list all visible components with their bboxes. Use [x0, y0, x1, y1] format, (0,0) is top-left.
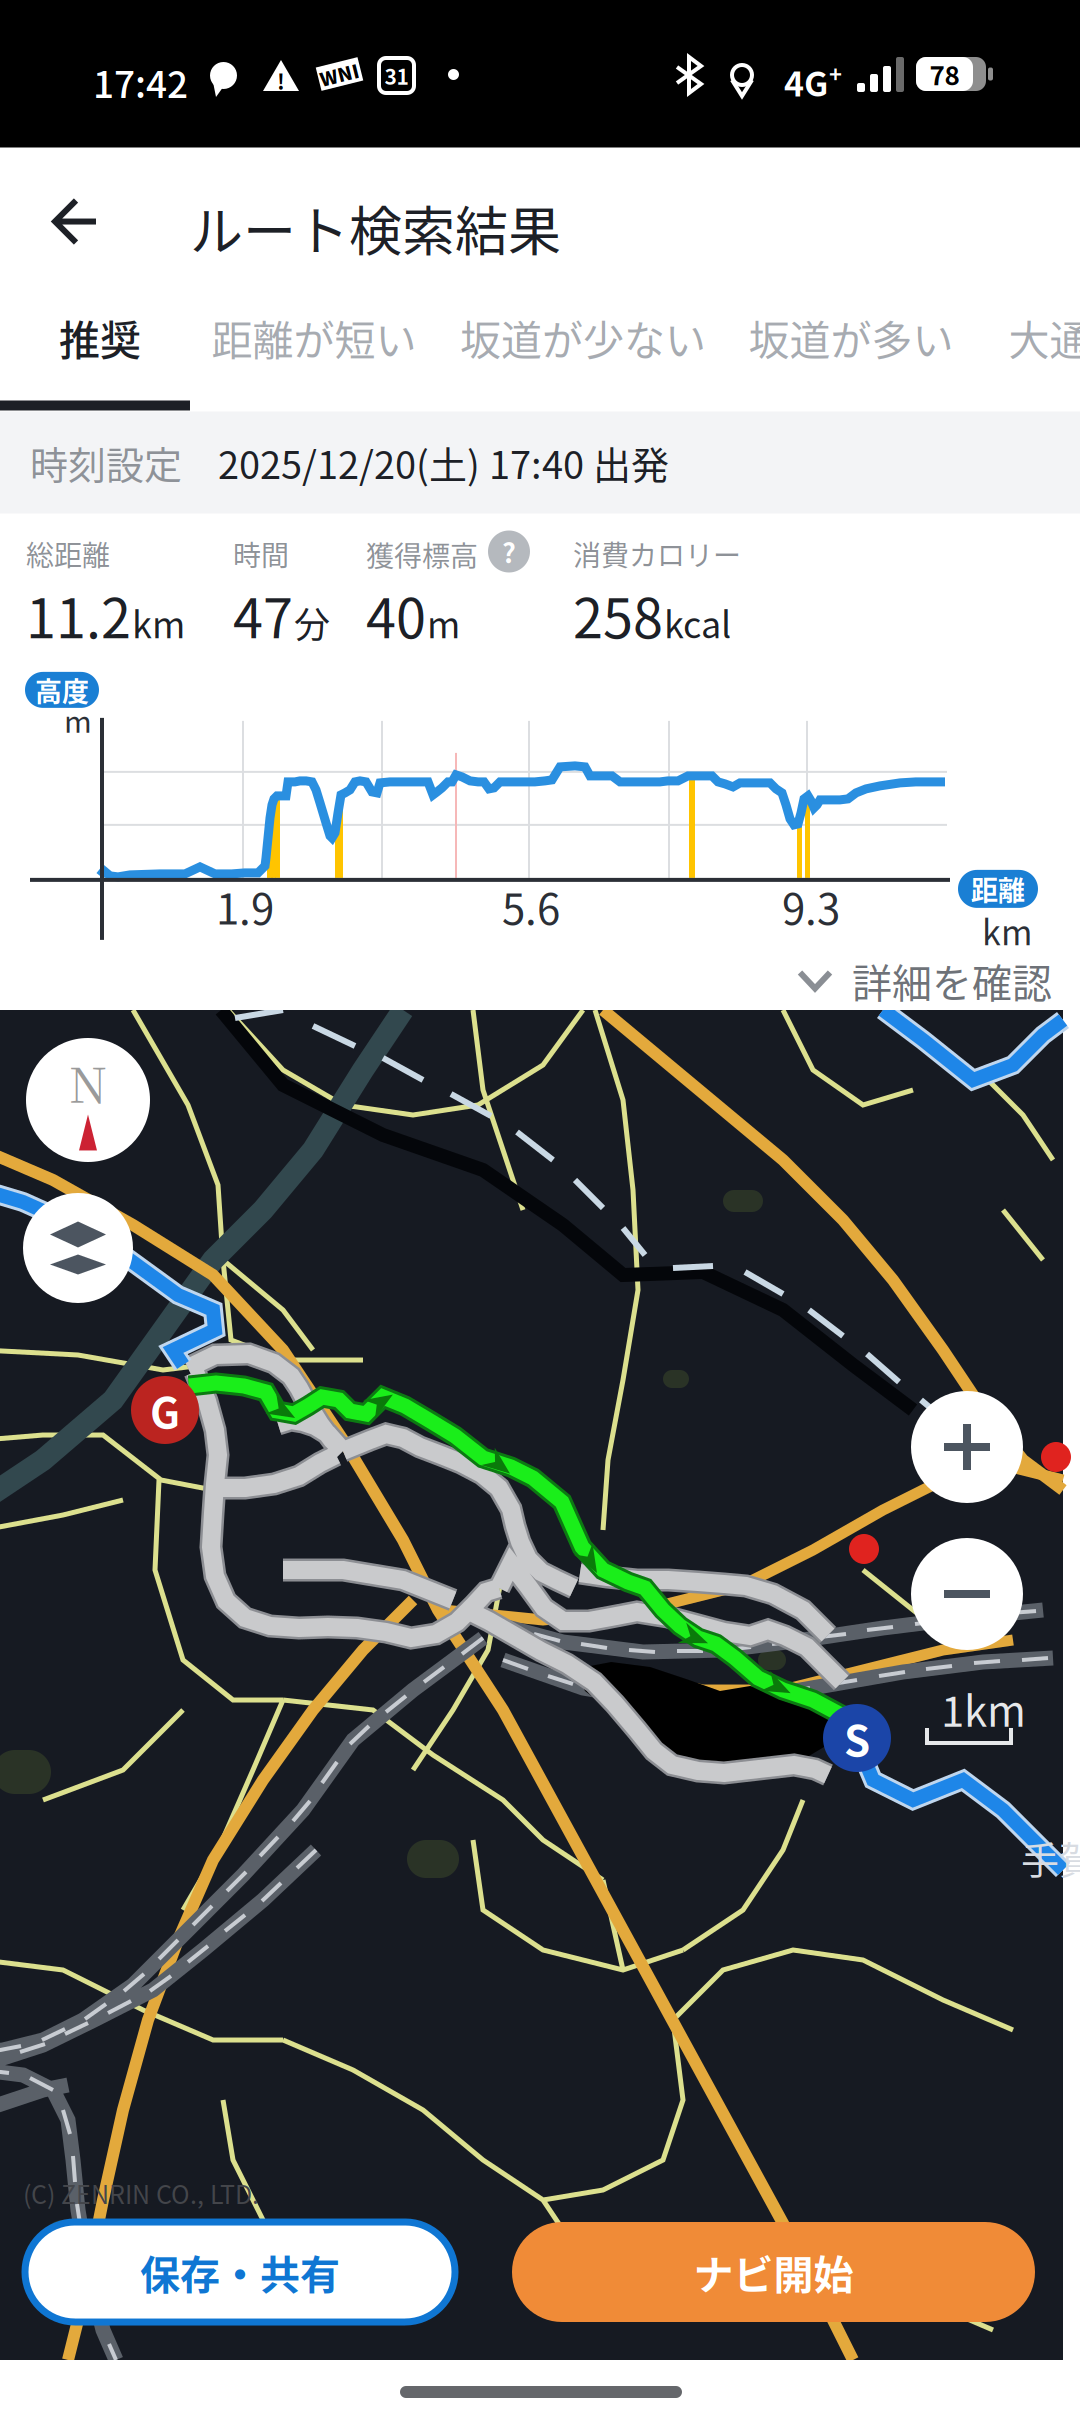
staticText: 保存・共有: [140, 2243, 340, 2301]
button[interactable]: ナビ開始: [512, 2222, 1035, 2322]
button[interactable]: 坂道が多い: [736, 277, 966, 397]
staticText: km: [982, 906, 1032, 955]
staticText: 詳細を確認: [852, 951, 1052, 1009]
staticText: 時刻設定: [30, 435, 182, 490]
staticText: 11.2: [26, 575, 131, 654]
button[interactable]: 方位: [26, 1038, 150, 1162]
staticText: 78: [929, 55, 959, 93]
staticText: 1.9: [216, 876, 274, 937]
staticText: kcal: [664, 596, 731, 648]
staticText: WNI: [319, 60, 359, 88]
staticText: S: [844, 1708, 870, 1768]
staticText: 坂道が少ない: [460, 308, 706, 367]
staticText: ナビ開始: [693, 2243, 853, 2301]
staticText: G: [150, 1380, 180, 1440]
button[interactable]: 大通り: [995, 277, 1080, 397]
staticText: +: [829, 57, 842, 89]
staticText: 時間: [233, 533, 289, 574]
button[interactable]: 戻る: [22, 170, 128, 272]
staticText: ルート検索結果: [190, 189, 561, 266]
staticText: 消費カロリー: [573, 533, 741, 574]
staticText: ?: [502, 532, 516, 571]
staticText: 258: [573, 575, 663, 654]
staticText: 17:42: [93, 55, 188, 109]
button[interactable]: 保存・共有: [25, 2222, 455, 2322]
staticText: 高度: [35, 670, 89, 709]
staticText: 距離: [971, 869, 1025, 908]
staticText: 1km: [941, 1678, 1026, 1739]
button[interactable]: 拡大: [911, 1391, 1023, 1503]
staticText: 総距離: [26, 533, 110, 574]
staticText: !: [277, 65, 285, 96]
button[interactable]: 縮小: [911, 1538, 1023, 1650]
staticText: 手賀: [1021, 1830, 1080, 1885]
staticText: 40: [366, 575, 426, 654]
button[interactable]: 坂道が少ない: [448, 277, 718, 397]
button[interactable]: レイヤー: [23, 1193, 133, 1303]
button[interactable]: 時刻設定: [0, 411, 1080, 513]
staticText: 31: [384, 60, 408, 91]
staticText: m: [427, 596, 460, 648]
staticText: 分: [294, 596, 330, 648]
staticText: 大通り: [1008, 308, 1080, 367]
staticText: N: [69, 1047, 107, 1116]
staticText: 9.3: [782, 876, 840, 937]
button[interactable]: 距離が短い: [199, 277, 429, 397]
staticText: 4G: [784, 57, 828, 106]
staticText: km: [132, 596, 185, 648]
staticText: 獲得標高: [366, 534, 478, 575]
staticText: 坂道が多い: [748, 308, 953, 367]
button[interactable]: 推奨: [5, 277, 195, 397]
staticText: 2025/12/20(土) 17:40 出発: [218, 435, 669, 490]
button[interactable]: 詳細を確認: [0, 947, 1080, 1013]
staticText: m: [64, 698, 92, 741]
staticText: 5.6: [502, 876, 560, 937]
staticText: 47: [233, 575, 293, 654]
staticText: (C) ZENRIN CO., LTD.: [23, 2175, 259, 2211]
staticText: 推奨: [59, 308, 141, 367]
staticText: 距離が短い: [211, 308, 416, 367]
